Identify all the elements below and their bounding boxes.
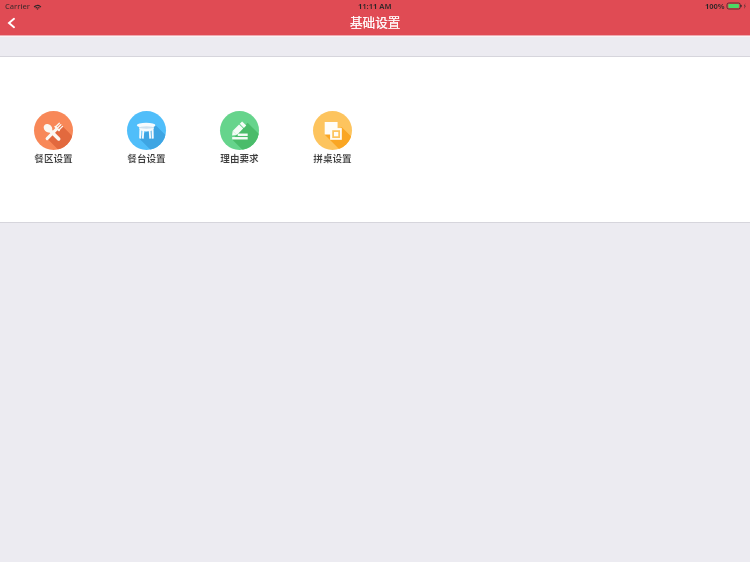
staticText: 餐台设置: [127, 151, 166, 165]
staticText: 拼桌设置: [313, 151, 352, 165]
staticText: 理由要求: [220, 151, 259, 165]
button[interactable]: 餐台设置: [100, 111, 193, 165]
button[interactable]: 餐区设置: [7, 111, 100, 165]
button[interactable]: 理由要求: [193, 111, 286, 165]
staticText: 100%: [705, 1, 725, 11]
staticText: 11:11 AM: [358, 1, 392, 11]
staticText: 基础设置: [350, 12, 401, 30]
button[interactable]: Back: [0, 13, 22, 32]
button[interactable]: 拼桌设置: [286, 111, 379, 165]
staticText: Carrier: [5, 1, 30, 11]
staticText: 餐区设置: [34, 151, 73, 165]
